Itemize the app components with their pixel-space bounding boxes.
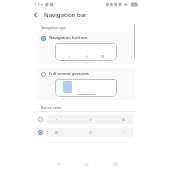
button[interactable] <box>37 127 135 138</box>
button[interactable]: Home <box>78 156 94 172</box>
button[interactable]: Full screen gestures <box>37 68 135 100</box>
staticText: Navigation type <box>41 25 67 30</box>
button[interactable] <box>37 114 135 125</box>
button[interactable]: Recent apps <box>107 156 123 172</box>
button[interactable]: Back <box>30 9 42 21</box>
button[interactable]: Navigation buttons <box>37 32 135 64</box>
staticText: Full screen gestures <box>49 71 89 77</box>
staticText: Navigation buttons <box>49 35 88 41</box>
staticText: Navigation bar <box>44 11 87 19</box>
staticText: Button order <box>41 105 62 110</box>
button[interactable]: Back <box>50 156 66 172</box>
